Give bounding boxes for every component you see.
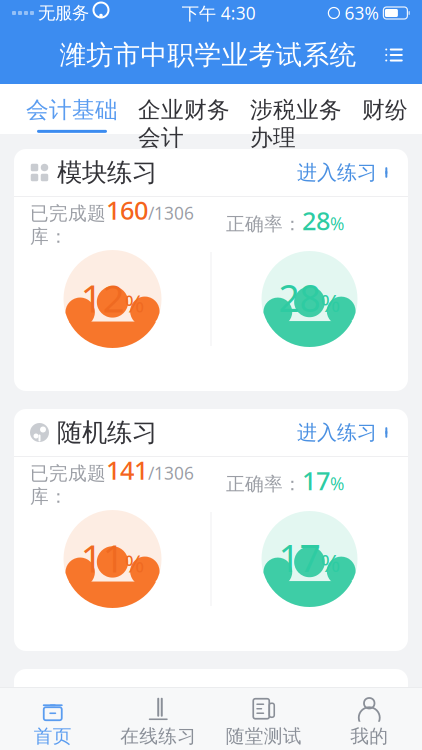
staticText: % <box>330 472 344 495</box>
staticText: 下午 4:30 <box>182 1 256 24</box>
button[interactable]: 涉税业务办理 <box>240 84 352 134</box>
staticText: 会计基础 <box>26 96 118 124</box>
button[interactable]: 我的 <box>316 688 422 750</box>
button[interactable]: 随机练习 <box>14 409 408 456</box>
staticText: 12 <box>80 272 124 323</box>
staticText: 无服务 <box>38 2 89 24</box>
staticText: 潍坊市中职学业考试系统 <box>59 39 356 71</box>
staticText: 141 <box>106 453 148 487</box>
staticText: 我的 <box>350 725 388 748</box>
staticText: 随堂测试 <box>226 725 302 748</box>
button[interactable]: 企业财务会计 <box>128 84 240 134</box>
staticText: /1306 <box>148 201 194 224</box>
button[interactable]: 菜单 <box>372 33 416 77</box>
staticText: 63% <box>344 1 378 24</box>
button[interactable]: 在线练习 <box>105 688 211 750</box>
staticText: 财纷 <box>362 96 408 124</box>
button[interactable]: 首页 <box>0 688 105 750</box>
staticText: 进入练习 <box>297 420 377 445</box>
staticText: 企业财务会计 <box>138 96 230 152</box>
staticText: 随机练习 <box>57 417 157 448</box>
staticText: % <box>330 212 344 235</box>
staticText: 涉税业务办理 <box>250 96 342 152</box>
staticText: 28 <box>302 204 330 237</box>
staticText: 进入练习 <box>297 160 377 185</box>
staticText: % <box>124 547 144 579</box>
button[interactable]: 模块练习 <box>14 149 408 196</box>
staticText: 在线练习 <box>120 725 196 748</box>
button[interactable]: 会计基础 <box>16 84 128 134</box>
button[interactable]: 财纷 <box>352 84 418 134</box>
staticText: % <box>320 547 340 579</box>
staticText: 模块练习 <box>57 157 157 188</box>
staticText: % <box>320 287 340 319</box>
staticText: 正确率： <box>226 213 302 235</box>
staticText: 已完成题库： <box>30 462 106 508</box>
staticText: 17 <box>302 464 330 497</box>
staticText: 28 <box>278 273 320 322</box>
staticText: % <box>124 287 144 319</box>
staticText: 正确率： <box>226 473 302 495</box>
staticText: 17 <box>278 533 320 582</box>
staticText: 160 <box>106 193 148 227</box>
staticText: 首页 <box>34 725 72 748</box>
staticText: /1306 <box>148 461 194 484</box>
staticText: 已完成题库： <box>30 202 106 248</box>
staticText: 11 <box>80 532 124 583</box>
button[interactable]: 随堂测试 <box>211 688 316 750</box>
